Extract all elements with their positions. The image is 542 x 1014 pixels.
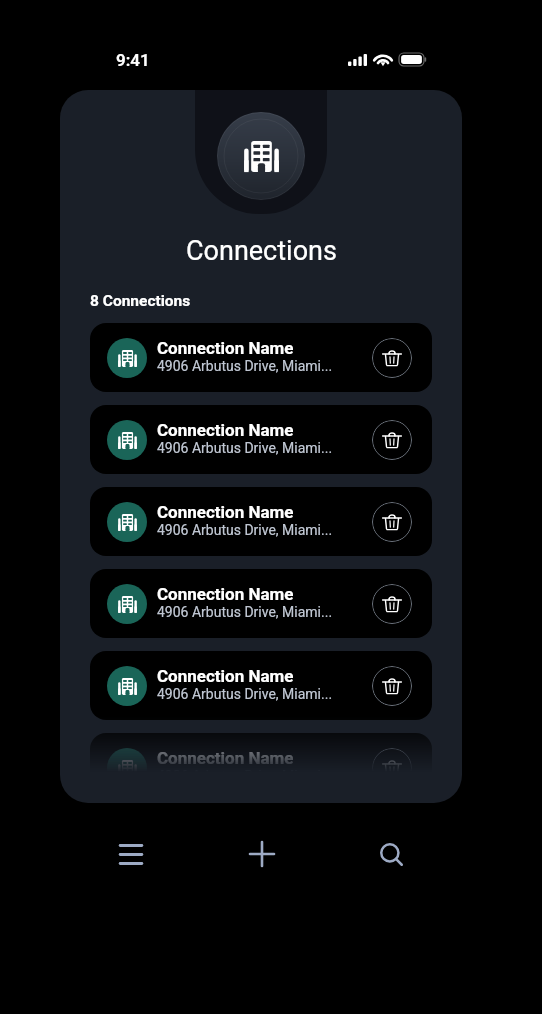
staticText: Connection Name xyxy=(157,666,294,686)
button[interactable]: Delete xyxy=(372,748,412,788)
staticText: Connection Name xyxy=(157,420,294,440)
button[interactable]: Add xyxy=(238,830,286,878)
button[interactable]: Connection Name xyxy=(90,651,432,720)
button[interactable]: Connection Name xyxy=(90,569,432,638)
button[interactable]: Delete xyxy=(372,584,412,624)
button[interactable]: Connection Name xyxy=(90,323,432,392)
staticText: 4906 Arbutus Drive, Miami... xyxy=(157,522,333,538)
button[interactable]: Menu xyxy=(107,830,155,878)
staticText: Connection Name xyxy=(157,502,294,522)
staticText: 4906 Arbutus Drive, Miami... xyxy=(157,440,333,456)
staticText: 4906 Arbutus Drive, Miami... xyxy=(157,358,333,374)
staticText: Connection Name xyxy=(157,338,294,358)
button[interactable]: Delete xyxy=(372,502,412,542)
staticText: 9:41 xyxy=(116,50,150,70)
button[interactable]: Connection Name xyxy=(90,405,432,474)
staticText: 8 Connections xyxy=(90,292,191,310)
button[interactable]: Delete xyxy=(372,338,412,378)
button[interactable]: Delete xyxy=(372,420,412,460)
button[interactable]: Search xyxy=(367,830,415,878)
button[interactable]: Connection Name xyxy=(90,733,432,802)
staticText: 4906 Arbutus Drive, Miami... xyxy=(157,604,333,620)
button[interactable]: Delete xyxy=(372,666,412,706)
button[interactable]: Connection Name xyxy=(90,487,432,556)
staticText: Connections xyxy=(186,235,337,267)
staticText: 4906 Arbutus Drive, Miami... xyxy=(157,686,333,702)
staticText: Connection Name xyxy=(157,584,294,604)
staticText: Connection Name xyxy=(157,748,294,768)
